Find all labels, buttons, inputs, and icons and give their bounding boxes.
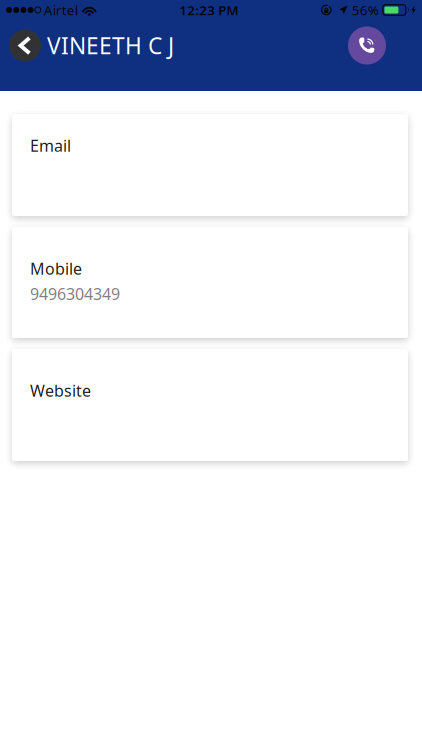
button[interactable]: Call [344,22,390,68]
staticText: Email [30,135,71,156]
staticText: Mobile [30,258,82,279]
staticText: Airtel [44,1,78,19]
staticText: VINEETH C J [47,30,174,60]
staticText: 9496304349 [30,283,120,304]
button[interactable]: Back [3,23,47,67]
staticText: Website [30,380,91,401]
button[interactable]: Mobile [12,227,408,338]
staticText: 56% [352,1,379,19]
button[interactable]: Email [12,114,408,216]
button[interactable]: Website [12,349,408,461]
staticText: 12:23 PM [179,1,238,19]
